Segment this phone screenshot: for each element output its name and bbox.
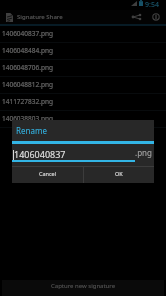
button[interactable]: 1406048484.png xyxy=(0,43,166,60)
staticText: 1406048706.png xyxy=(2,63,53,72)
staticText: OK xyxy=(115,170,123,177)
button[interactable]: OK xyxy=(84,167,154,183)
button[interactable]: 1406048812.png xyxy=(0,77,166,94)
staticText: Rename xyxy=(16,125,47,136)
button[interactable]: 1406040837.png xyxy=(0,26,166,43)
staticText: 9:54 xyxy=(145,0,159,10)
button[interactable]: Cancel xyxy=(12,167,83,183)
staticText: 1406038803.png xyxy=(2,114,53,123)
button[interactable]: 1411727832.png xyxy=(0,94,166,111)
button[interactable]: Share xyxy=(127,10,146,24)
button[interactable]: About xyxy=(146,10,165,24)
button[interactable]: Capture new signature xyxy=(2,280,164,296)
staticText: .png xyxy=(135,147,152,158)
staticText: Cancel xyxy=(39,170,57,177)
staticText: Capture new signature xyxy=(51,282,116,290)
staticText: 1411727832.png xyxy=(2,97,53,106)
button[interactable]: 1406048706.png xyxy=(0,60,166,77)
staticText: 1406040837.png xyxy=(2,29,53,38)
staticText: 1406048484.png xyxy=(2,46,53,55)
staticText: 1406048812.png xyxy=(2,80,53,89)
staticText: Signature Share xyxy=(17,13,63,21)
button[interactable]: 1406038803.png xyxy=(0,111,166,128)
staticText: 1406040837 xyxy=(14,148,66,160)
